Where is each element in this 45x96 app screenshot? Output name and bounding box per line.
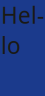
staticText: Hello [1,0,44,60]
